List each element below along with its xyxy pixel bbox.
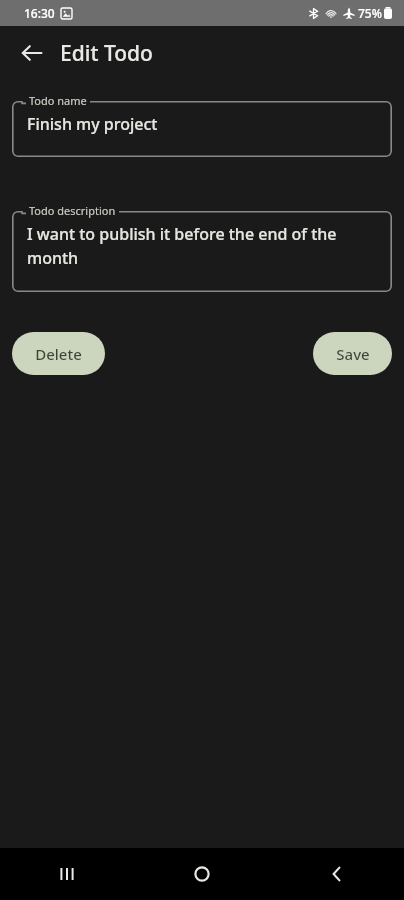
button[interactable]: Back	[269, 848, 404, 900]
button[interactable]: Finish my project	[12, 101, 392, 157]
staticText: Delete	[35, 344, 82, 364]
staticText: Todo name	[29, 93, 87, 108]
staticText: 75%	[358, 5, 382, 21]
staticText: Save	[336, 344, 370, 364]
button[interactable]: Home	[134, 848, 269, 900]
button[interactable]: Back	[10, 31, 54, 75]
staticText: Todo description	[29, 203, 116, 218]
button[interactable]: Recent apps	[0, 848, 134, 900]
button[interactable]: I want to publish it before the end of t…	[12, 211, 392, 292]
staticText: Finish my project	[27, 113, 158, 135]
staticText: 16:30	[24, 5, 55, 21]
button[interactable]: Delete	[12, 332, 105, 375]
button[interactable]: Save	[313, 332, 392, 375]
staticText: Edit Todo	[60, 39, 153, 68]
staticText: I want to publish it before the end of t…	[27, 223, 337, 269]
